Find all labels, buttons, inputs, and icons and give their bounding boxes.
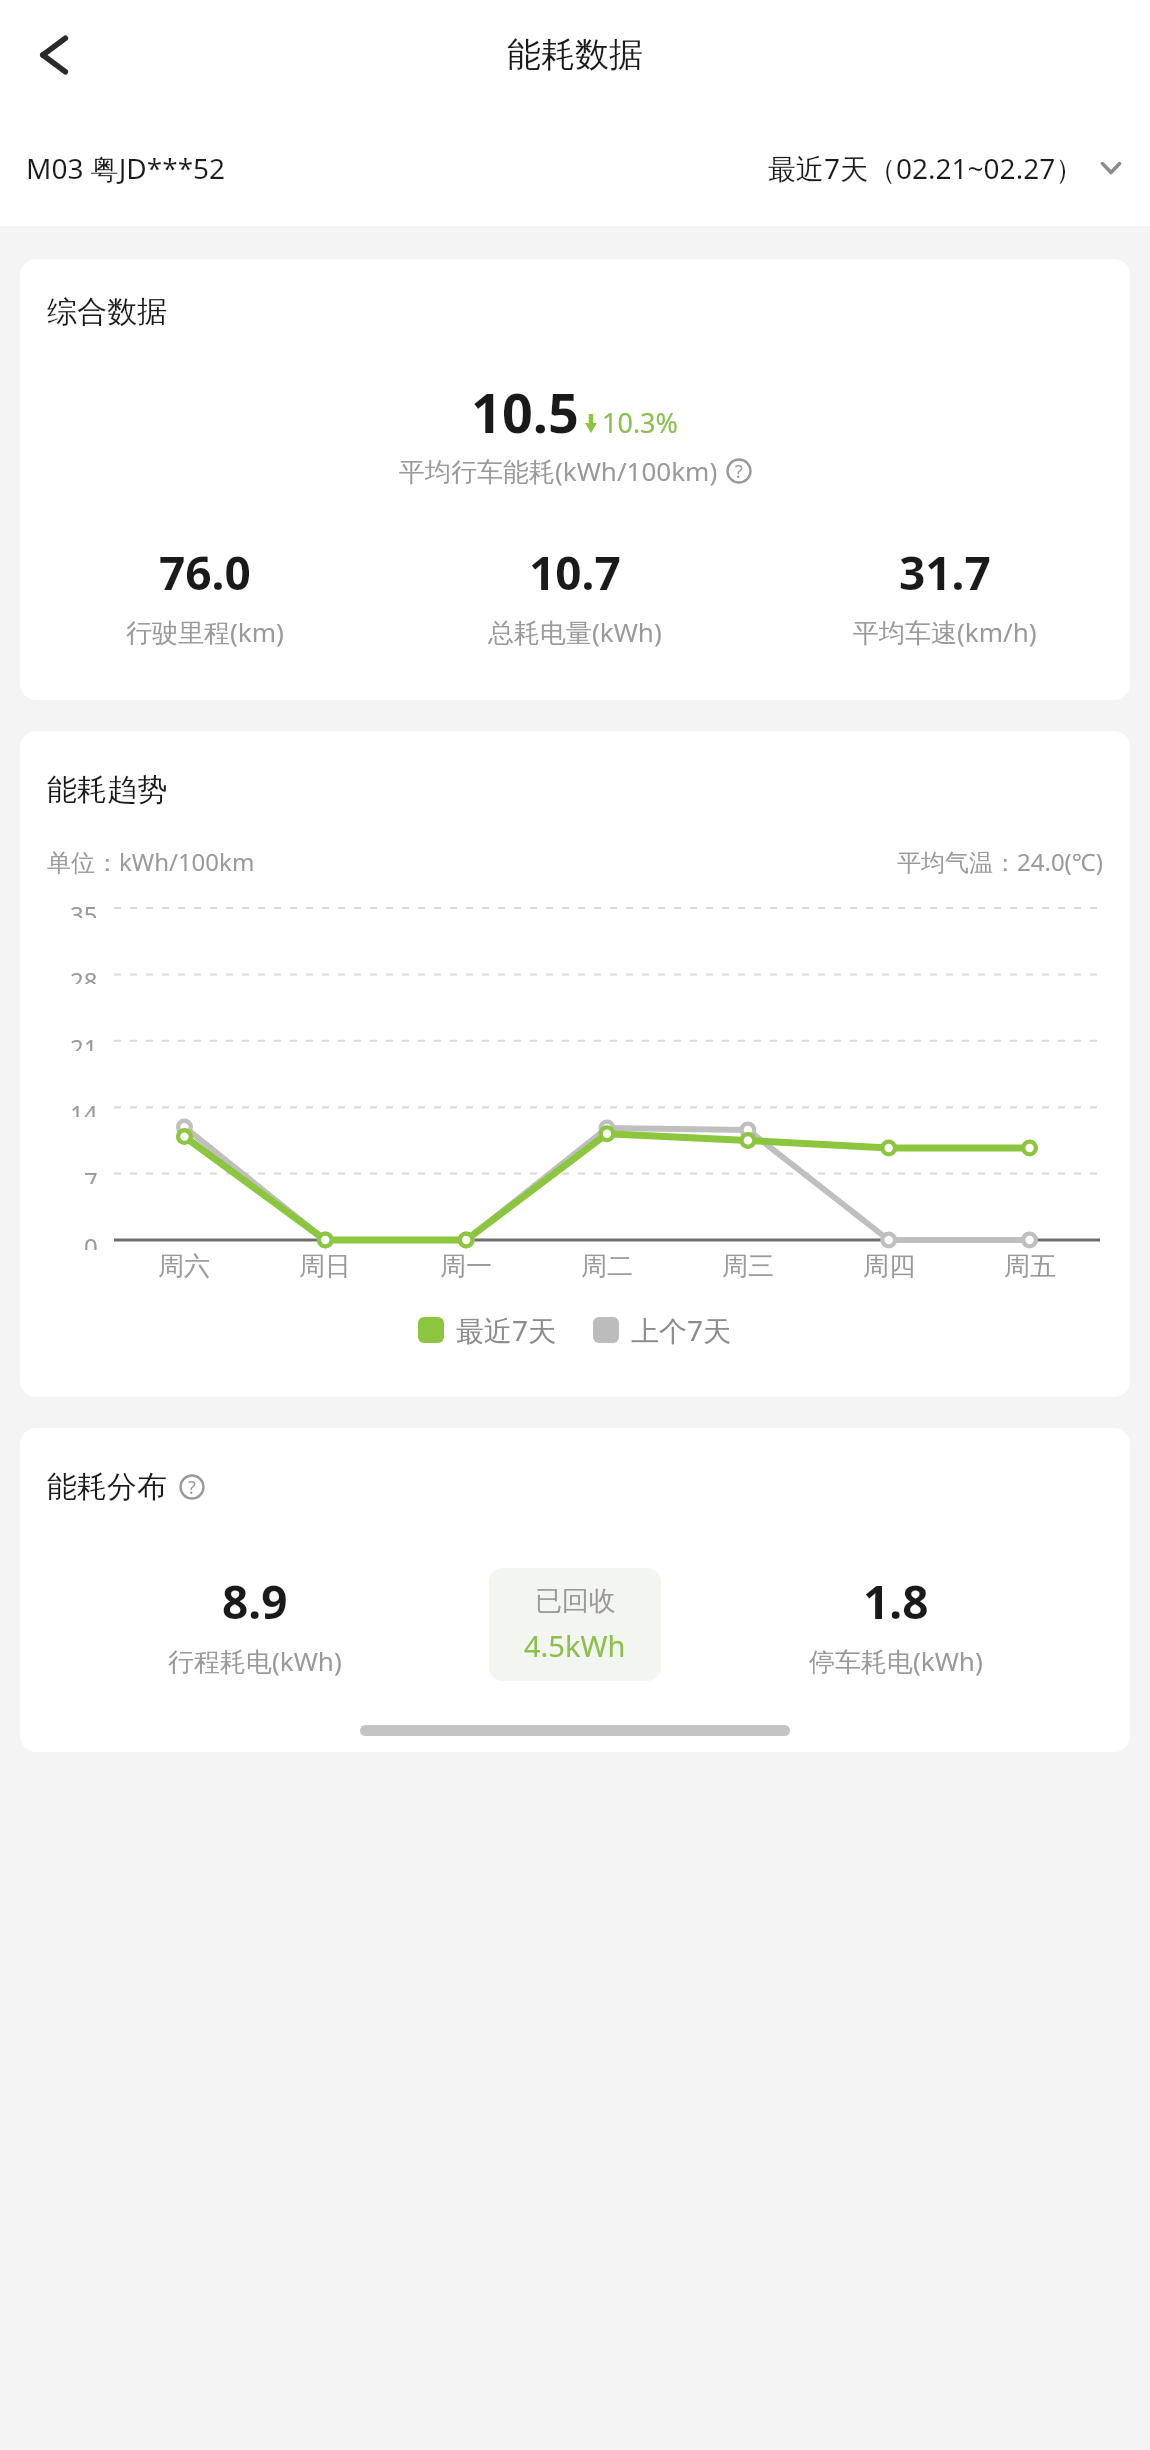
staticText: 能耗趋势	[47, 771, 167, 809]
staticText: 周日	[299, 1250, 351, 1283]
staticText: 周二	[581, 1250, 633, 1283]
staticText: 最近7天	[456, 1311, 557, 1349]
button[interactable]: 最近7天（02.21~02.27）	[768, 149, 1124, 187]
staticText: 14	[70, 1097, 98, 1117]
staticText: 35	[70, 898, 98, 918]
staticText: 10.5	[471, 375, 579, 449]
staticText: 单位：kWh/100km	[47, 845, 255, 878]
button[interactable]: Help	[726, 458, 752, 484]
staticText: 10.7	[529, 541, 621, 604]
staticText: 1.8	[863, 1570, 929, 1633]
staticText: 最近7天（02.21~02.27）	[768, 149, 1084, 187]
staticText: ?	[726, 459, 752, 484]
staticText: 周三	[722, 1250, 774, 1283]
staticText: 7	[84, 1164, 98, 1184]
staticText: 0	[84, 1230, 98, 1250]
staticText: 上个7天	[631, 1311, 732, 1349]
staticText: 行驶里程(km)	[126, 614, 284, 650]
staticText: 周一	[440, 1250, 492, 1283]
staticText: M03 粤JD***52	[26, 149, 226, 187]
staticText: ?	[179, 1475, 205, 1500]
staticText: 平均行车能耗(kWh/100km)	[399, 453, 718, 489]
staticText: 周四	[863, 1250, 915, 1283]
staticText: 周五	[1004, 1250, 1056, 1283]
staticText: 8.9	[222, 1570, 288, 1633]
staticText: 平均气温：24.0(℃)	[897, 845, 1103, 878]
button[interactable]: 最近7天	[418, 1311, 557, 1349]
staticText: 综合数据	[47, 293, 167, 331]
staticText: 停车耗电(kWh)	[809, 1643, 983, 1679]
staticText: 4.5kWh	[524, 1626, 626, 1665]
staticText: 平均车速(km/h)	[853, 614, 1037, 650]
staticText: 总耗电量(kWh)	[488, 614, 662, 650]
staticText: 已回收	[535, 1584, 616, 1618]
staticText: 周六	[158, 1250, 210, 1283]
staticText: 行程耗电(kWh)	[168, 1643, 342, 1679]
staticText: 能耗分布	[47, 1468, 167, 1506]
staticText: 31.7	[899, 541, 991, 604]
button[interactable]: 上个7天	[593, 1311, 732, 1349]
staticText: 76.0	[159, 541, 251, 604]
staticText: 28	[70, 964, 98, 984]
button[interactable]: Help	[179, 1474, 205, 1500]
staticText: 21	[70, 1031, 98, 1051]
staticText: 能耗数据	[507, 33, 643, 76]
staticText: 10.3%	[602, 404, 679, 441]
button[interactable]: Back	[20, 27, 76, 83]
